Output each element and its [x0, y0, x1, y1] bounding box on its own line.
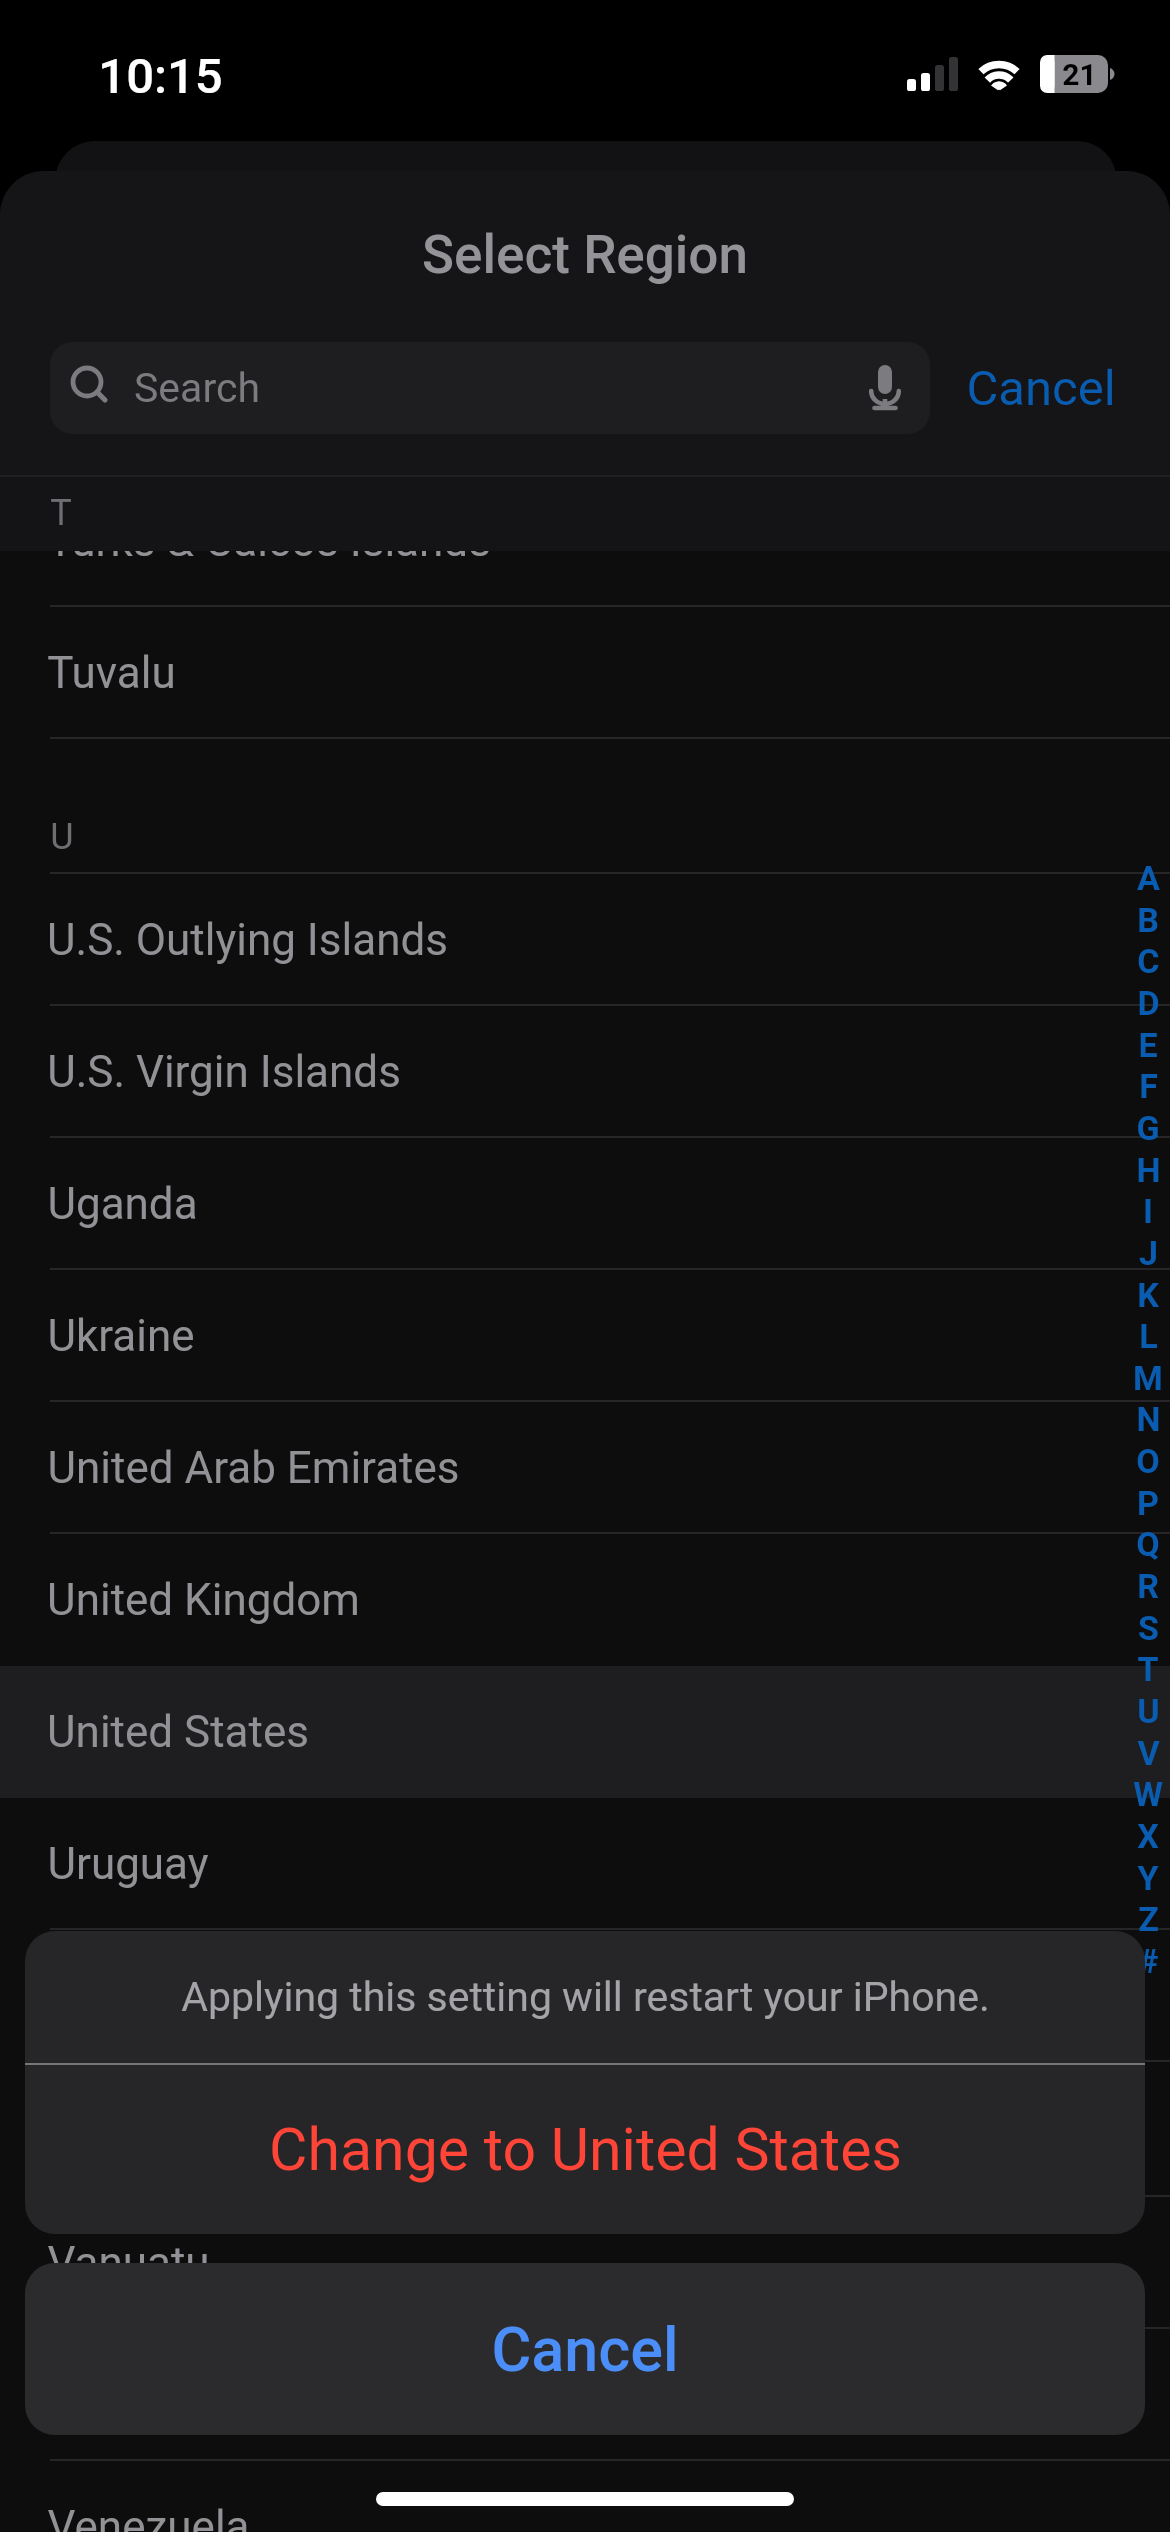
staticText: N: [1136, 1399, 1161, 1439]
staticText: I: [1143, 1191, 1153, 1231]
staticText: V: [1137, 1733, 1160, 1773]
staticText: H: [1136, 1150, 1161, 1190]
button[interactable]: United States: [0, 1666, 1170, 1798]
button[interactable]: Change to United States: [25, 2065, 1145, 2234]
staticText: M: [1133, 1358, 1163, 1398]
button[interactable]: Tuvalu: [0, 607, 1170, 739]
staticText: F: [1139, 1066, 1158, 1106]
staticText: United States: [47, 1706, 309, 1758]
button[interactable]: United Arab Emirates: [0, 1402, 1170, 1534]
button[interactable]: Venezuela: [0, 2461, 1170, 2532]
staticText: Uzbekistan: [47, 1970, 264, 2022]
staticText: United Kingdom: [47, 1574, 360, 1626]
staticText: Vanuatu: [47, 2237, 210, 2289]
button[interactable]: United Kingdom: [0, 1534, 1170, 1666]
staticText: Select Region: [422, 224, 748, 286]
button[interactable]: Cancel: [946, 342, 1136, 434]
button[interactable]: Vatican City: [0, 2329, 1170, 2461]
staticText: U: [50, 816, 74, 858]
staticText: Y: [1137, 1858, 1159, 1898]
staticText: 21: [1062, 57, 1097, 92]
button[interactable]: Uzbekistan: [0, 1930, 1170, 2062]
staticText: Z: [1138, 1899, 1159, 1939]
staticText: U: [1137, 1691, 1160, 1731]
staticText: G: [1136, 1108, 1160, 1148]
button[interactable]: U.S. Outlying Islands: [0, 874, 1170, 1006]
staticText: U.S. Outlying Islands: [47, 914, 448, 966]
staticText: Tuvalu: [47, 647, 176, 699]
button[interactable]: U.S. Virgin Islands: [0, 1006, 1170, 1138]
button[interactable]: Alphabet index: [1128, 857, 1168, 1987]
staticText: E: [1138, 1025, 1158, 1065]
button[interactable]: Turks & Caicos Islands: [0, 475, 1170, 607]
button[interactable]: Vanuatu: [0, 2197, 1170, 2329]
button[interactable]: Voice search: [868, 363, 902, 413]
staticText: Cancel: [966, 360, 1116, 417]
staticText: T: [50, 492, 72, 534]
staticText: Turks & Caicos Islands: [47, 515, 491, 567]
staticText: United Arab Emirates: [47, 1442, 460, 1494]
staticText: Venezuela: [47, 2501, 250, 2532]
staticText: #: [1138, 1941, 1159, 1981]
staticText: S: [1138, 1608, 1159, 1648]
button[interactable]: Ukraine: [0, 1270, 1170, 1402]
button[interactable]: Uganda: [0, 1138, 1170, 1270]
staticText: B: [1137, 900, 1159, 940]
staticText: J: [1139, 1233, 1158, 1273]
staticText: L: [1139, 1316, 1158, 1356]
staticText: Ukraine: [47, 1310, 195, 1362]
staticText: U.S. Virgin Islands: [47, 1046, 401, 1098]
staticText: Q: [1136, 1524, 1160, 1564]
staticText: O: [1136, 1441, 1160, 1481]
staticText: Uruguay: [47, 1838, 209, 1890]
button[interactable]: Uruguay: [0, 1798, 1170, 1930]
staticText: P: [1137, 1483, 1159, 1523]
staticText: Applying this setting will restart your …: [181, 1973, 990, 2021]
button[interactable]: Search: [50, 342, 930, 434]
staticText: W: [1133, 1774, 1163, 1814]
button[interactable]: Cancel: [25, 2263, 1145, 2435]
staticText: T: [1137, 1649, 1159, 1689]
staticText: K: [1137, 1275, 1159, 1315]
staticText: C: [1137, 941, 1160, 981]
staticText: Change to United States: [269, 2115, 902, 2184]
staticText: Cancel: [491, 2314, 679, 2385]
staticText: Uganda: [47, 1178, 198, 1230]
staticText: A: [1137, 858, 1160, 898]
staticText: 10:15: [98, 48, 223, 105]
staticText: D: [1137, 983, 1160, 1023]
staticText: R: [1137, 1566, 1159, 1606]
staticText: X: [1137, 1816, 1159, 1856]
staticText: Search: [134, 364, 260, 412]
